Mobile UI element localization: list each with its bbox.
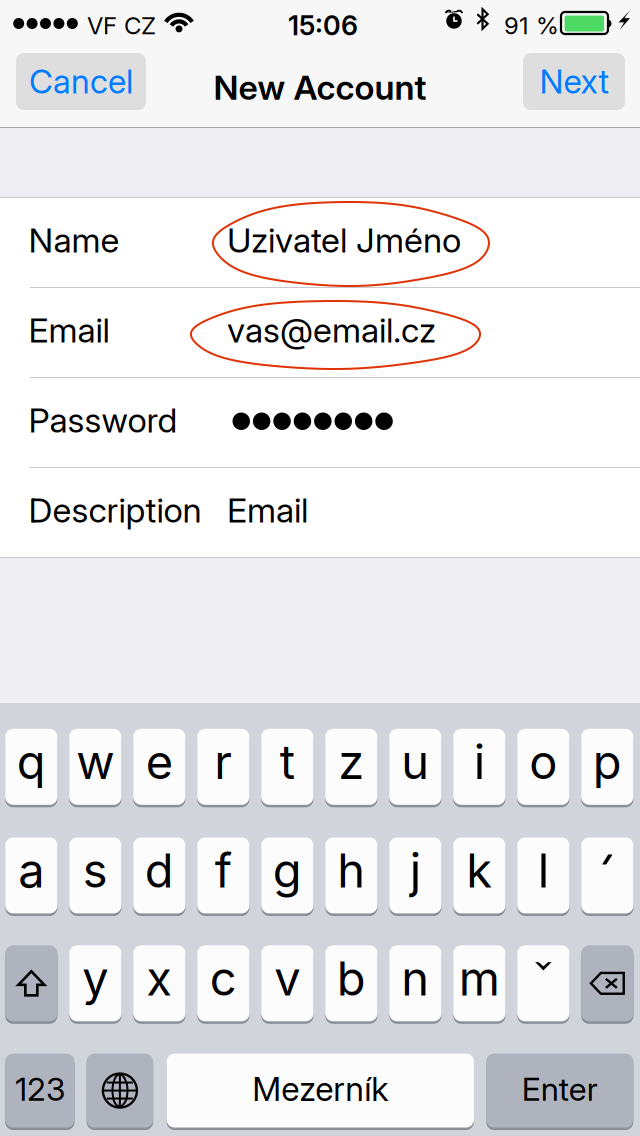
button[interactable]: Email — [0, 288, 640, 377]
staticText: c — [210, 950, 237, 1007]
button[interactable]: x — [133, 944, 185, 1023]
button[interactable]: d — [133, 836, 185, 915]
button[interactable]: p — [581, 728, 633, 806]
staticText: j — [410, 842, 421, 899]
staticText: Password — [28, 399, 177, 441]
staticText: 91 % — [504, 11, 559, 40]
button[interactable]: 123 — [5, 1052, 75, 1129]
staticText: t — [280, 733, 295, 790]
button[interactable]: g — [261, 836, 313, 915]
button[interactable]: f — [197, 836, 249, 915]
staticText: x — [146, 950, 172, 1007]
staticText: Uzivatel Jméno — [227, 219, 461, 261]
staticText: a — [18, 842, 44, 899]
button[interactable]: m — [453, 944, 505, 1023]
button[interactable]: t — [261, 728, 313, 806]
staticText: w — [76, 733, 114, 790]
staticText: b — [337, 950, 366, 1007]
staticText: Mezerník — [252, 1069, 388, 1109]
button[interactable]: Shift — [5, 944, 57, 1023]
staticText: m — [459, 950, 500, 1007]
button[interactable]: n — [389, 944, 441, 1023]
staticText: 123 — [15, 1070, 65, 1108]
button[interactable]: i — [453, 728, 505, 806]
staticText: z — [338, 733, 364, 790]
staticText: Email — [28, 309, 109, 351]
staticText: g — [273, 842, 302, 899]
staticText: q — [17, 733, 46, 790]
staticText: v — [274, 950, 300, 1007]
button[interactable]: Acute accent — [581, 836, 633, 915]
button[interactable]: Password — [0, 378, 640, 467]
button[interactable]: h — [325, 836, 377, 915]
button[interactable]: Name — [0, 198, 640, 287]
button[interactable]: v — [261, 944, 313, 1023]
button[interactable]: e — [133, 728, 185, 806]
staticText: k — [466, 842, 492, 899]
button[interactable]: c — [197, 944, 249, 1023]
button[interactable]: Next keyboard — [87, 1052, 153, 1129]
button[interactable]: Enter — [486, 1052, 633, 1129]
button[interactable]: Caron accent — [517, 944, 569, 1023]
button[interactable]: o — [517, 728, 569, 806]
button[interactable]: Cancel — [16, 53, 146, 110]
staticText: f — [215, 842, 232, 899]
button[interactable]: s — [69, 836, 121, 915]
button[interactable]: Mezerník — [167, 1052, 474, 1129]
button[interactable]: Delete — [581, 944, 633, 1023]
staticText: vas@email.cz — [227, 309, 436, 351]
staticText: i — [474, 733, 485, 790]
button[interactable]: r — [197, 728, 249, 806]
button[interactable]: z — [325, 728, 377, 806]
staticText: p — [593, 733, 622, 790]
button[interactable]: u — [389, 728, 441, 806]
staticText: Description — [28, 489, 201, 531]
staticText: s — [83, 842, 108, 899]
button[interactable]: w — [69, 728, 121, 806]
staticText: Next — [539, 61, 608, 101]
staticText: o — [529, 733, 557, 790]
button[interactable]: a — [5, 836, 57, 915]
staticText: Enter — [522, 1070, 598, 1108]
staticText: u — [401, 733, 429, 790]
staticText: Name — [28, 219, 119, 261]
staticText: d — [145, 842, 174, 899]
staticText: e — [146, 733, 173, 790]
staticText: n — [401, 950, 429, 1007]
staticText: y — [82, 950, 108, 1007]
button[interactable]: q — [5, 728, 57, 806]
staticText: New Account — [213, 67, 426, 108]
button[interactable]: j — [389, 836, 441, 915]
button[interactable]: Description — [0, 468, 640, 557]
staticText: Cancel — [29, 61, 133, 101]
staticText: r — [214, 733, 232, 790]
staticText: h — [337, 842, 365, 899]
staticText: Email — [227, 489, 308, 531]
button[interactable]: Next — [523, 53, 625, 110]
staticText: 15:06 — [288, 9, 358, 42]
button[interactable]: k — [453, 836, 505, 915]
button[interactable]: l — [517, 836, 569, 915]
button[interactable]: b — [325, 944, 377, 1023]
button[interactable]: y — [69, 944, 121, 1023]
staticText: VF CZ — [87, 11, 156, 40]
staticText: l — [538, 842, 549, 899]
